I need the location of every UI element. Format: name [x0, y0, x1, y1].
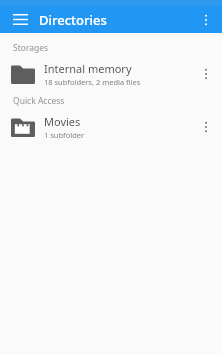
staticText: Storages	[13, 42, 49, 54]
button[interactable]: More options	[192, 6, 219, 33]
button[interactable]: More options for Movies	[193, 111, 219, 143]
staticText: 1 subfolder	[44, 130, 85, 140]
button[interactable]: Internal memory	[0, 58, 222, 90]
staticText: Directories	[39, 11, 107, 29]
staticText: Internal memory	[44, 61, 132, 76]
button[interactable]: More options for Internal memory	[193, 58, 219, 90]
staticText: Movies	[44, 114, 81, 129]
button[interactable]: Open navigation drawer	[6, 6, 34, 33]
button[interactable]: Movies	[0, 111, 222, 143]
staticText: Quick Access	[13, 95, 65, 107]
staticText: 18 subfolders, 2 media files	[44, 77, 141, 87]
